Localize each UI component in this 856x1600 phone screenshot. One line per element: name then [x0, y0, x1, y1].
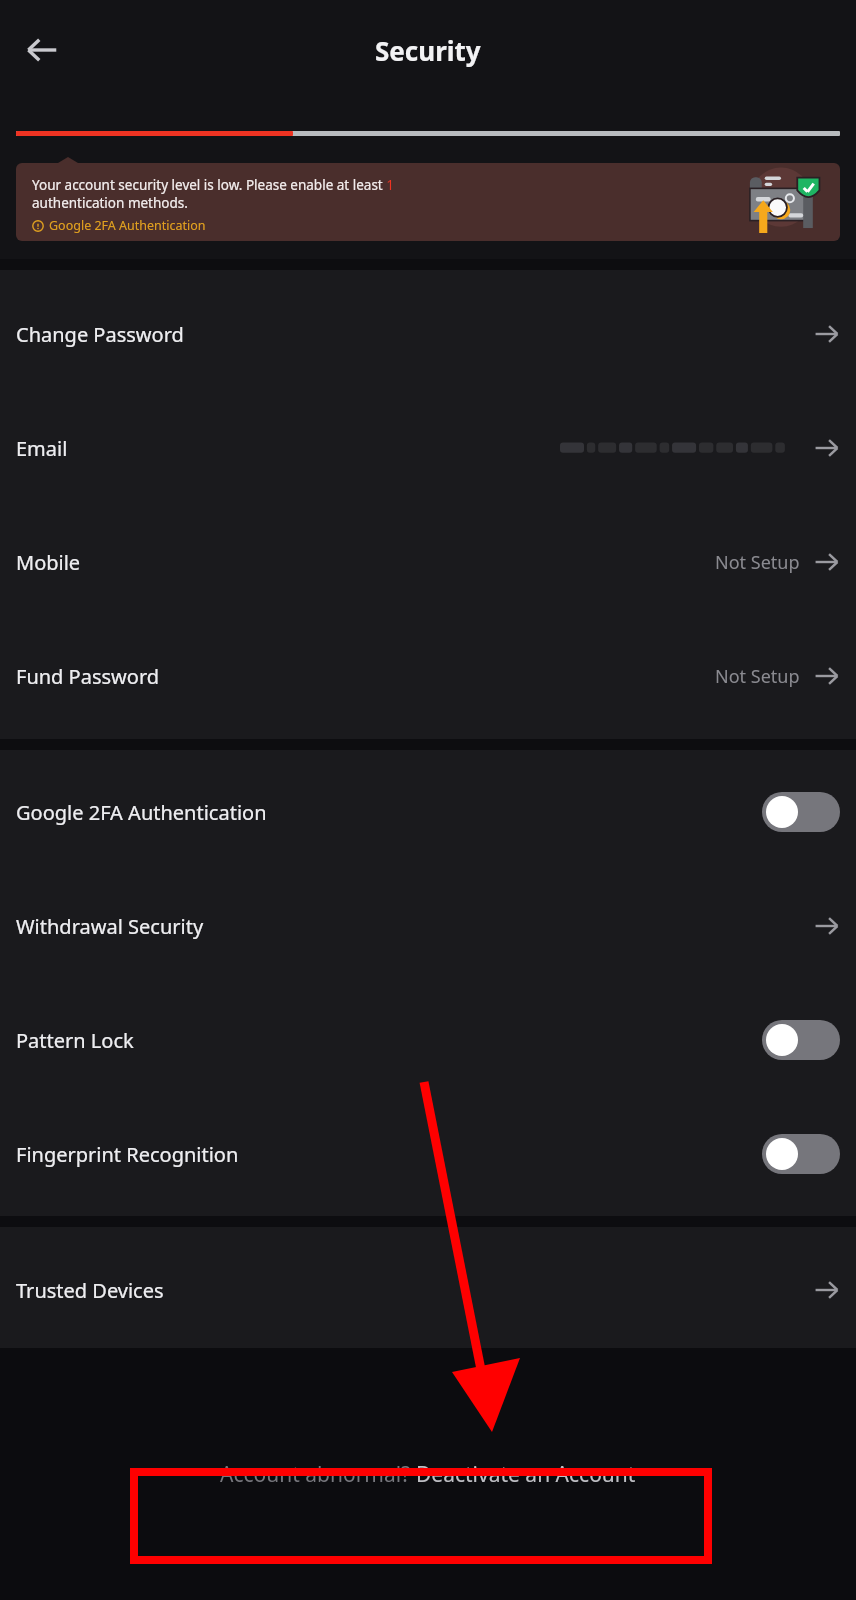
- button[interactable]: Back: [14, 22, 70, 78]
- other: Open: [814, 663, 840, 689]
- button[interactable]: Account abnormal?: [200, 1446, 656, 1503]
- button[interactable]: Fingerprint Recognition: [0, 1097, 856, 1211]
- button[interactable]: Your account security level is low. Plea…: [16, 163, 840, 241]
- button[interactable]: Email: [0, 391, 856, 505]
- staticText: Mobile: [16, 549, 81, 576]
- staticText: Email: [16, 435, 68, 462]
- button[interactable]: Pattern Lock: [0, 983, 856, 1097]
- staticText: Change Password: [16, 321, 184, 348]
- button[interactable]: Withdrawal Security: [0, 869, 856, 983]
- other: Open: [814, 321, 840, 347]
- staticText: Account abnormal?: [220, 1460, 416, 1489]
- staticText: Google 2FA Authentication: [49, 217, 206, 234]
- other: Open: [814, 1277, 840, 1303]
- button[interactable]: Fund Password: [0, 619, 856, 733]
- staticText: Withdrawal Security: [16, 913, 204, 940]
- button[interactable]: Change Password: [0, 277, 856, 391]
- staticText: Google 2FA Authentication: [16, 799, 267, 826]
- staticText: Not Setup: [715, 664, 800, 689]
- staticText: Pattern Lock: [16, 1027, 134, 1054]
- button[interactable]: Trusted Devices: [0, 1233, 856, 1347]
- other: Open: [814, 549, 840, 575]
- other: Open: [814, 435, 840, 461]
- staticText: Your account security level is low. Plea…: [32, 176, 394, 212]
- button[interactable]: Toggle: [762, 792, 840, 832]
- button[interactable]: Toggle: [762, 1134, 840, 1174]
- button[interactable]: Toggle: [762, 1020, 840, 1060]
- staticText: Fingerprint Recognition: [16, 1141, 239, 1168]
- staticText: Fund Password: [16, 663, 160, 690]
- staticText: Security: [375, 33, 481, 68]
- staticText: Deactivate an Account: [416, 1460, 636, 1489]
- staticText: Trusted Devices: [16, 1277, 164, 1304]
- button[interactable]: Mobile: [0, 505, 856, 619]
- staticText: Not Setup: [715, 550, 800, 575]
- button[interactable]: Google 2FA Authentication: [0, 755, 856, 869]
- other: Open: [814, 913, 840, 939]
